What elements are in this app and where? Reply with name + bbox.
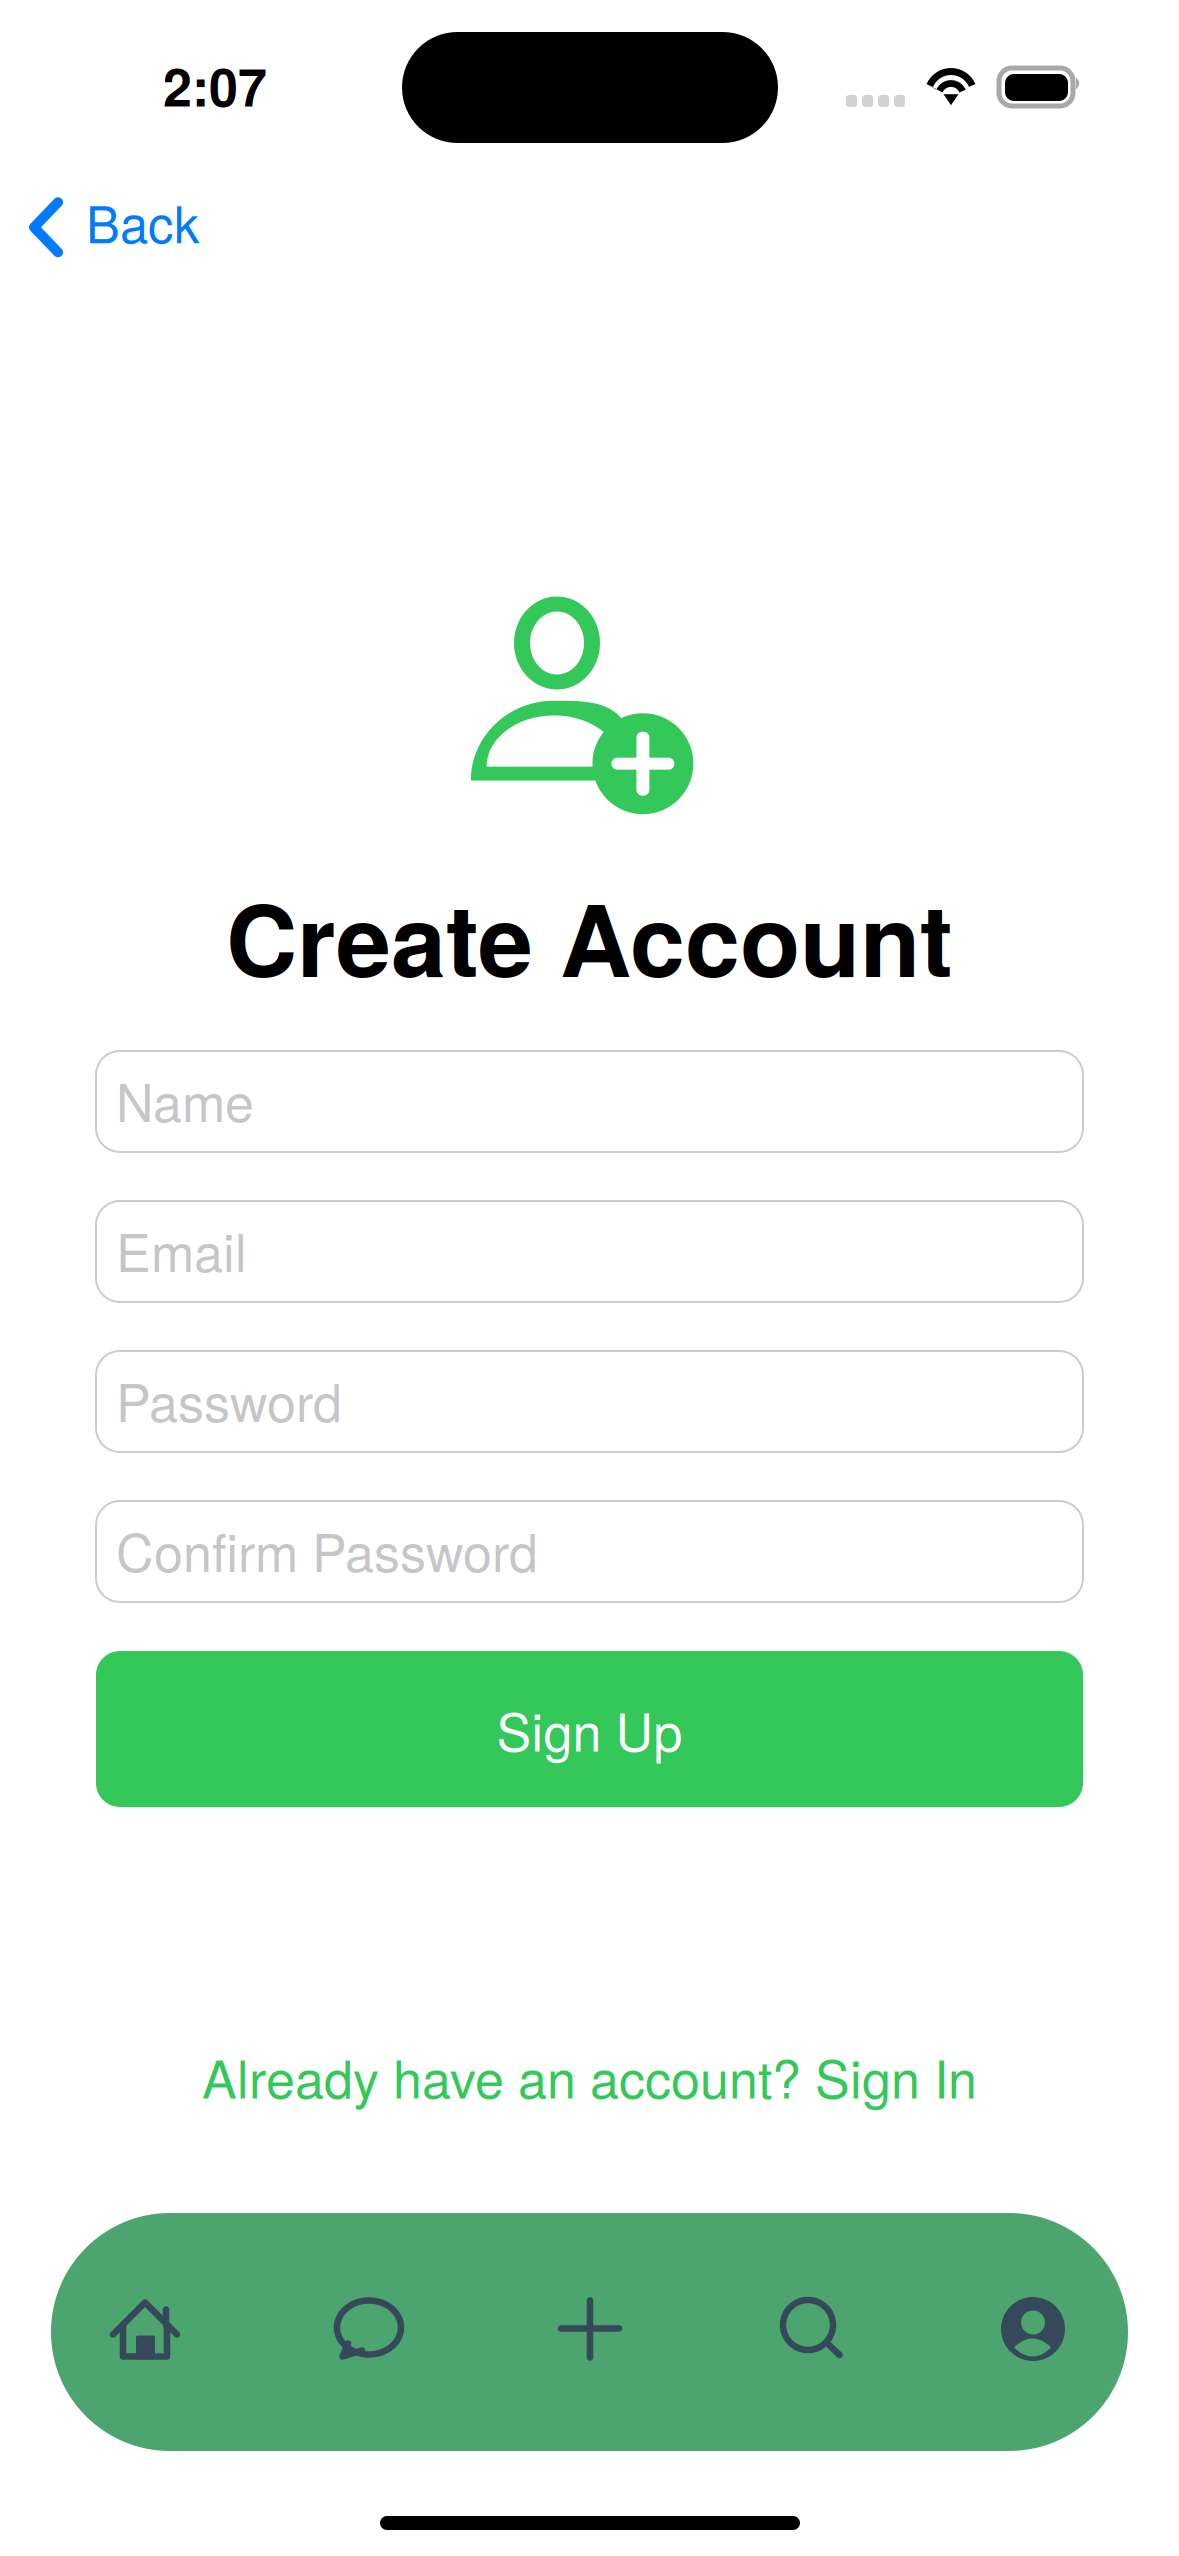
button[interactable]: Sign Up [96, 1651, 1083, 1807]
button[interactable]: Profile [958, 2210, 1108, 2448]
staticText: Confirm Password [116, 1512, 538, 1587]
staticText: Create Account [226, 866, 953, 1007]
button[interactable]: Messages [293, 2209, 443, 2447]
button[interactable]: Name [96, 1051, 1083, 1152]
staticText: Password [116, 1362, 342, 1437]
staticText: Name [116, 1062, 254, 1137]
button[interactable]: Confirm Password [96, 1501, 1083, 1602]
button[interactable]: Already have an account? Sign In [0, 2039, 1179, 2113]
staticText: Email [116, 1212, 247, 1287]
button[interactable]: Email [96, 1201, 1083, 1302]
button[interactable]: Home [70, 2210, 220, 2448]
staticText: 2:07 [163, 48, 267, 122]
button[interactable]: Password [96, 1351, 1083, 1452]
staticText: Sign Up [496, 1692, 682, 1766]
staticText: Back [86, 185, 199, 258]
button[interactable]: Back [2, 177, 225, 278]
staticText: Already have an account? Sign In [202, 2039, 977, 2113]
button[interactable]: Search [739, 2210, 889, 2448]
button[interactable]: Create [515, 2210, 665, 2448]
